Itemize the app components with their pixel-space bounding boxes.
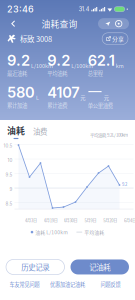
staticText: 62.1 bbox=[88, 52, 115, 69]
staticText: 8.5 bbox=[5, 201, 12, 206]
button[interactable]: Navigate and locate bbox=[98, 18, 129, 29]
staticText: 6月4日 bbox=[124, 217, 135, 223]
staticText: 油耗 bbox=[7, 124, 25, 137]
button[interactable]: 历史记录 bbox=[6, 259, 64, 274]
button[interactable]: Back bbox=[6, 16, 21, 31]
staticText: 平均油耗 9.2L/100km bbox=[90, 132, 128, 138]
staticText: 9.2 bbox=[122, 181, 127, 187]
staticText: 油费 bbox=[33, 126, 47, 137]
staticText: 问题反馈 bbox=[100, 280, 120, 288]
staticText: 9.2 bbox=[47, 52, 70, 69]
staticText: 总里程 bbox=[88, 69, 103, 77]
staticText: 累计加油 bbox=[7, 101, 27, 109]
staticText: 历史记录 bbox=[21, 262, 49, 272]
staticText: 累计油费 bbox=[47, 101, 67, 109]
staticText: 油耗 L/100km bbox=[35, 228, 68, 236]
button[interactable]: 优惠加油记油耗 bbox=[46, 280, 89, 288]
staticText: 5月20日 bbox=[103, 217, 117, 223]
staticText: 9.2 bbox=[7, 52, 30, 69]
staticText: 元 bbox=[80, 93, 85, 101]
staticText: 平均油耗 bbox=[84, 228, 104, 236]
button[interactable]: 油耗 bbox=[7, 124, 25, 139]
staticText: 优惠加油记油耗 bbox=[50, 280, 85, 288]
staticText: L bbox=[36, 93, 39, 101]
button[interactable]: 分享 bbox=[102, 33, 128, 44]
staticText: 车友常见问题 bbox=[9, 280, 39, 288]
button[interactable]: 油费 bbox=[33, 126, 47, 139]
staticText: 10.5 bbox=[3, 143, 12, 148]
staticText: L/100km bbox=[31, 62, 53, 69]
staticText: 元 bbox=[104, 94, 109, 102]
staticText: 5月9日 bbox=[84, 217, 96, 223]
staticText: 记油耗 bbox=[89, 262, 110, 272]
staticText: 分享 bbox=[112, 34, 124, 43]
staticText: 9 bbox=[9, 186, 12, 192]
staticText: 一 bbox=[88, 83, 103, 102]
staticText: 油耗查询 bbox=[41, 17, 77, 30]
staticText: L/100km bbox=[71, 62, 93, 69]
button[interactable]: 问题反馈 bbox=[89, 280, 132, 288]
staticText: 标致 3008 bbox=[20, 33, 52, 44]
staticText: km bbox=[116, 62, 124, 69]
staticText: 10 bbox=[7, 157, 12, 163]
staticText: 4月3日 bbox=[25, 217, 37, 223]
staticText: 平均油耗 bbox=[47, 69, 67, 77]
staticText: 23:46 bbox=[7, 4, 34, 15]
staticText: 最近油耗 bbox=[7, 69, 27, 77]
staticText: 9.5 bbox=[5, 172, 12, 177]
button[interactable]: 记油耗 bbox=[70, 259, 129, 274]
staticText: 单公里油费 bbox=[88, 102, 113, 109]
button[interactable]: 车友常见问题 bbox=[3, 280, 46, 288]
staticText: 31.4 bbox=[79, 6, 90, 13]
staticText: 4107 bbox=[47, 83, 79, 101]
staticText: 4月30日 bbox=[64, 217, 78, 223]
staticText: 4月19日 bbox=[44, 217, 58, 223]
staticText: 580 bbox=[7, 83, 35, 101]
